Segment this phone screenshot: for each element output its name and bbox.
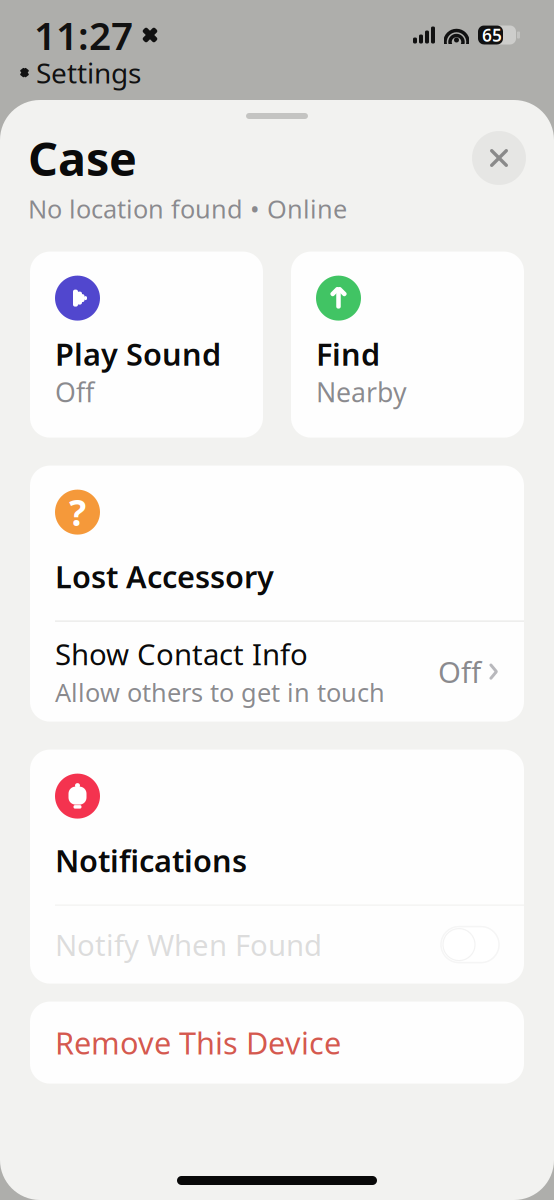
staticText: Nearby	[316, 374, 407, 410]
button[interactable]: Remove This Device	[30, 1002, 524, 1084]
staticText: Show Contact Info	[55, 634, 308, 673]
button[interactable]: Show Contact Info	[30, 622, 524, 722]
button[interactable]: Close	[472, 131, 526, 185]
staticText: Notify When Found	[55, 925, 322, 964]
staticText: Allow others to get in touch	[55, 675, 385, 709]
staticText: 11:27	[34, 9, 133, 61]
button[interactable]: Play Sound	[30, 252, 263, 438]
button[interactable]: ?	[30, 466, 524, 621]
staticText: Notifications	[55, 840, 247, 881]
staticText: Remove This Device	[55, 1022, 341, 1063]
staticText: Lost Accessory	[55, 556, 274, 597]
button[interactable]: Find	[291, 252, 524, 438]
staticText: 65	[482, 23, 502, 46]
staticText: Off	[438, 652, 481, 691]
staticText: Off	[55, 374, 94, 410]
staticText: Case	[28, 127, 137, 189]
button[interactable]: Notifications	[30, 750, 524, 905]
staticText: No location found • Online	[28, 192, 347, 226]
staticText: ?	[69, 488, 86, 536]
staticText: Settings	[36, 54, 141, 91]
staticText: Find	[316, 333, 380, 374]
staticText: Play Sound	[55, 333, 221, 374]
button[interactable]: Notify When Found	[30, 906, 524, 984]
